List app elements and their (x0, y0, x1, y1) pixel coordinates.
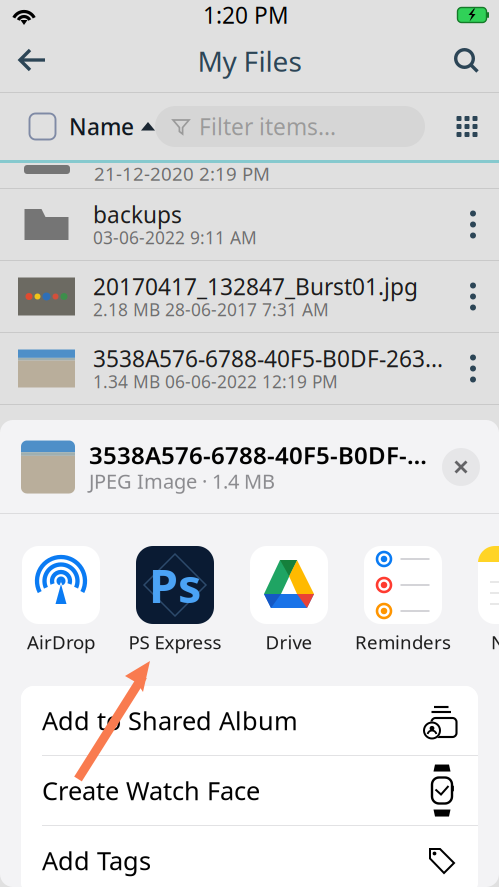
button[interactable]: Add to Shared Album (21, 686, 478, 755)
staticText: 2.18 MB 28-06-2017 7:31 AM (93, 298, 329, 321)
button[interactable]: Name (69, 104, 155, 148)
button[interactable]: Search (433, 30, 499, 92)
button[interactable]: Back (0, 30, 66, 92)
staticText: Reminders (355, 630, 451, 654)
staticText: Ps (149, 554, 201, 616)
button[interactable]: Grid view (435, 104, 499, 148)
staticText: AirDrop (27, 630, 95, 654)
staticText: 03-06-2022 9:11 AM (93, 226, 257, 249)
staticText: Drive (265, 630, 312, 654)
staticText: JPEG Image · 1.4 MB (89, 468, 275, 494)
button[interactable]: Notes (460, 546, 499, 660)
staticText: 1:20 PM (203, 0, 289, 30)
button[interactable]: More options (455, 346, 491, 390)
button[interactable]: More options (455, 202, 491, 246)
button[interactable]: Add Tags (21, 826, 478, 887)
button[interactable]: Close (437, 443, 485, 491)
button[interactable]: Drive (232, 546, 346, 660)
staticText: Filter items... (199, 111, 336, 141)
staticText: Notes (491, 630, 499, 654)
staticText: PS Express (128, 630, 221, 654)
button[interactable]: More options (455, 274, 491, 318)
staticText: My Files (197, 42, 301, 80)
staticText: 1.34 MB 06-06-2022 12:19 PM (93, 370, 338, 393)
button[interactable]: AirDrop (4, 546, 118, 660)
button[interactable]: Reminders (346, 546, 460, 660)
staticText: 20170417_132847_Burst01.jpg (93, 271, 418, 301)
staticText: Name (69, 111, 134, 141)
button[interactable]: Create Watch Face (21, 756, 478, 825)
button[interactable]: Select all (0, 104, 69, 148)
button[interactable]: Ps (118, 546, 232, 660)
staticText: Add to Shared Album (42, 704, 298, 737)
staticText: 3538A576-6788-40F5-B0DF-263... (93, 343, 443, 373)
staticText: backups (93, 199, 182, 229)
staticText: 21-12-2020 2:19 PM (94, 161, 270, 186)
staticText: Create Watch Face (42, 774, 260, 807)
staticText: 3538A576-6788-40F5-B0DF-26... (89, 439, 429, 471)
staticText: Add Tags (42, 844, 151, 877)
